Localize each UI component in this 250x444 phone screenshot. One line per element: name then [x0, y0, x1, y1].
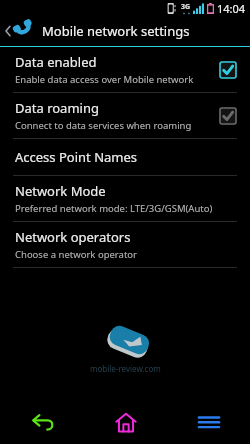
staticText: Mobile network settings: [42, 22, 190, 40]
button[interactable]: Back: [0, 400, 84, 444]
staticText: Enable data access over Mobile network: [15, 73, 194, 86]
button[interactable]: Disabled checkbox: [219, 107, 237, 125]
staticText: mobile-review.com: [90, 363, 161, 374]
staticText: Access Point Names: [15, 148, 138, 166]
staticText: Data enabled: [15, 53, 97, 71]
button[interactable]: Network operators: [0, 222, 250, 267]
button[interactable]: Data enabled: [0, 47, 250, 92]
staticText: Network operators: [15, 228, 131, 246]
button[interactable]: Enabled checkbox: [219, 61, 237, 79]
staticText: Choose a network operator: [15, 248, 137, 261]
staticText: Network Mode: [15, 182, 106, 200]
button[interactable]: Home: [84, 400, 167, 444]
staticText: Data roaming: [15, 99, 99, 117]
staticText: 14:04: [217, 1, 246, 16]
button[interactable]: Data roaming: [0, 93, 250, 138]
staticText: Preferred network mode: LTE/3G/GSM(Auto): [15, 202, 213, 215]
button[interactable]: Mobile network settings: [0, 16, 250, 46]
button[interactable]: Access Point Names: [0, 139, 250, 175]
staticText: Connect to data services when roaming: [15, 119, 192, 132]
staticText: 3G: [181, 2, 191, 12]
button[interactable]: Menu: [167, 400, 250, 444]
button[interactable]: Network Mode: [0, 176, 250, 221]
